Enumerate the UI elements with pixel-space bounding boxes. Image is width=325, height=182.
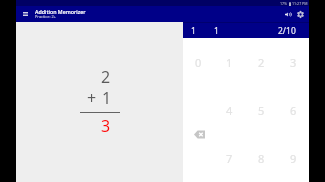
button[interactable]: Backspace xyxy=(183,86,214,182)
button[interactable]: 8 xyxy=(245,134,277,182)
staticText: 2/10 xyxy=(278,25,296,37)
staticText: 11:27 PM xyxy=(292,1,308,6)
staticText: 3 xyxy=(290,55,297,70)
staticText: 1 xyxy=(102,87,112,109)
staticText: 0 xyxy=(195,55,202,70)
staticText: + xyxy=(87,87,97,109)
staticText: 5 xyxy=(258,103,265,118)
staticText: 1 xyxy=(214,25,219,37)
staticText: 6 xyxy=(290,103,297,118)
staticText: 4 xyxy=(226,103,233,118)
staticText: 9 xyxy=(290,151,297,166)
staticText: 3 xyxy=(101,115,111,137)
staticText: 17% xyxy=(280,1,288,6)
button[interactable]: Open navigation menu xyxy=(19,8,31,20)
staticText: Addition Memorizer xyxy=(35,8,86,15)
staticText: 8 xyxy=(258,151,265,166)
staticText: 1 xyxy=(191,25,196,37)
staticText: 2 xyxy=(101,66,111,88)
staticText: 7 xyxy=(226,151,233,166)
button[interactable] xyxy=(183,86,214,134)
staticText: 1 xyxy=(226,55,233,70)
button[interactable] xyxy=(183,134,214,182)
button[interactable]: Sound xyxy=(282,9,293,20)
staticText: 2 xyxy=(258,55,265,70)
staticText: Practice: 2+ xyxy=(35,14,56,19)
button[interactable]: Settings xyxy=(295,9,306,20)
